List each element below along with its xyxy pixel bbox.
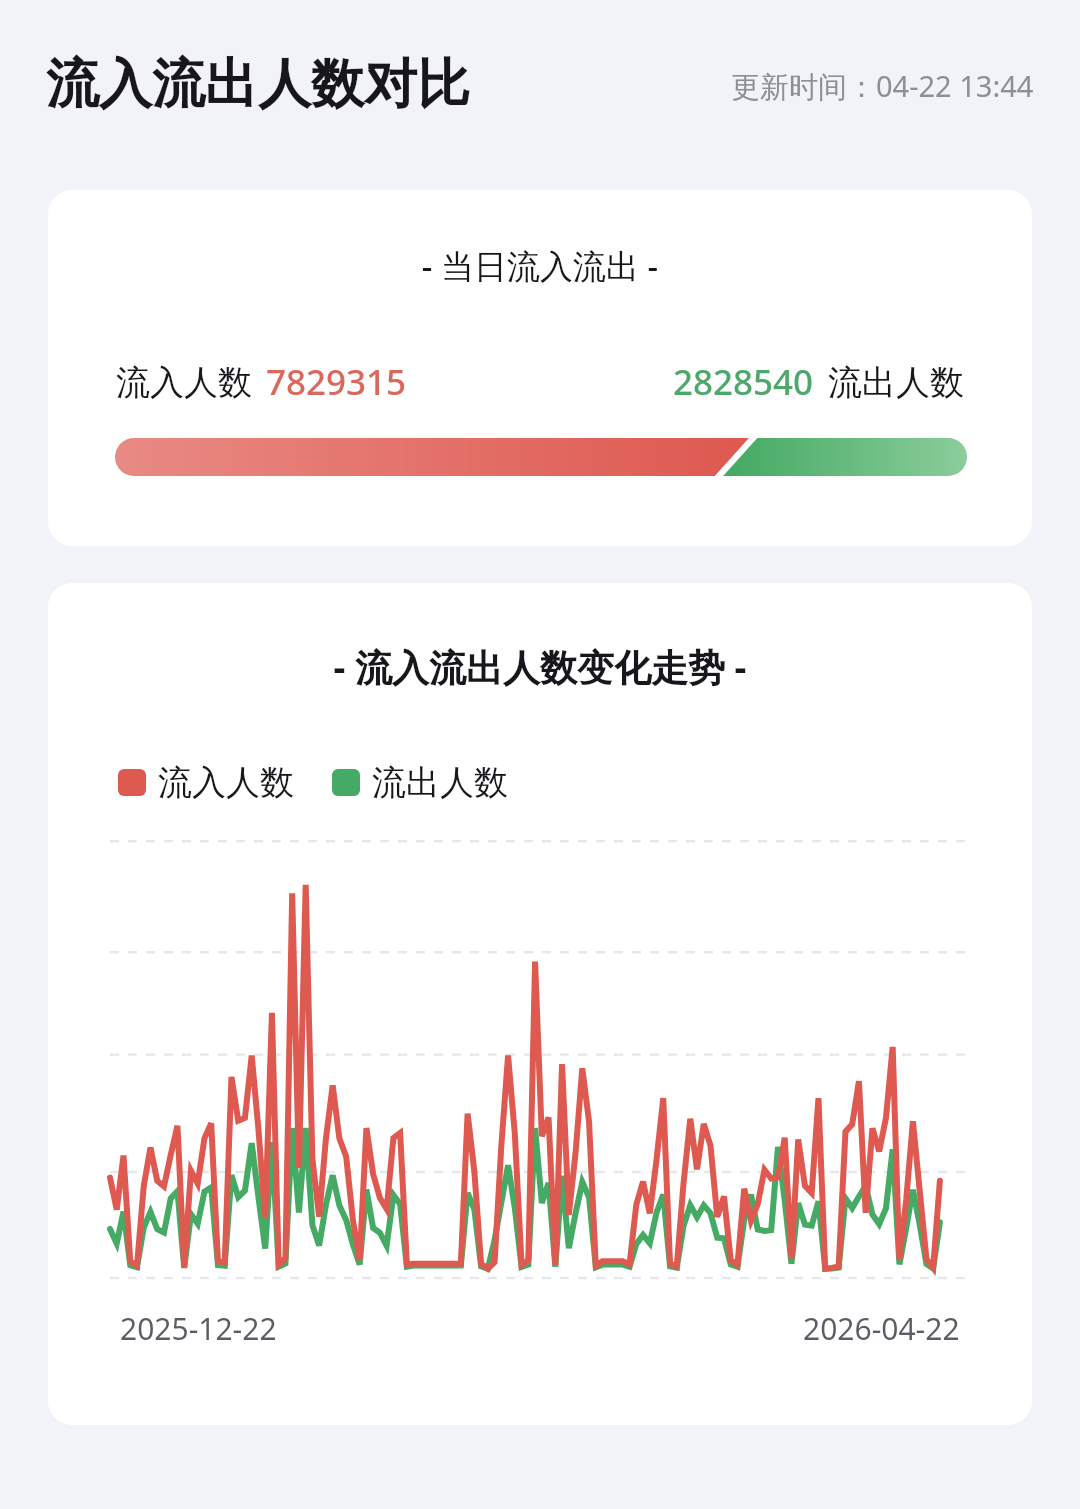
staticText: 2025-12-22: [120, 1308, 277, 1349]
staticText: 流入人数: [116, 361, 252, 404]
staticText: 流入流出人数对比: [46, 51, 470, 118]
staticText: 更新时间：04-22 13:44: [731, 66, 1034, 106]
staticText: 2828540: [673, 358, 814, 406]
staticText: 流入人数: [158, 761, 294, 804]
staticText: 7829315: [266, 358, 407, 406]
staticText: 流出人数: [372, 761, 508, 804]
button[interactable]: - 当日流入流出 -: [48, 190, 1032, 546]
staticText: 流出人数: [828, 361, 964, 404]
staticText: 2026-04-22: [803, 1308, 960, 1349]
staticText: - 当日流入流出 -: [48, 243, 1032, 288]
staticText: - 流入流出人数变化走势 -: [48, 641, 1032, 692]
button[interactable]: - 流入流出人数变化走势 -: [48, 583, 1032, 1425]
